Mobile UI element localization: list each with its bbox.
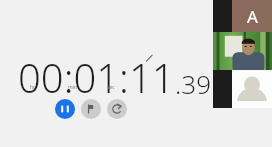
staticText: min [68, 84, 78, 91]
staticText: A [247, 5, 258, 28]
staticText: sec [107, 84, 115, 91]
button[interactable]: Lap [81, 99, 101, 119]
button[interactable]: Reset [107, 99, 127, 119]
staticText: hr [30, 84, 36, 91]
staticText: .39 [175, 66, 212, 101]
button[interactable] [213, 32, 272, 70]
button[interactable]: A [213, 0, 272, 32]
staticText: 00:01:11 [18, 50, 175, 104]
button[interactable] [213, 70, 272, 108]
button[interactable]: Pause [55, 99, 75, 119]
